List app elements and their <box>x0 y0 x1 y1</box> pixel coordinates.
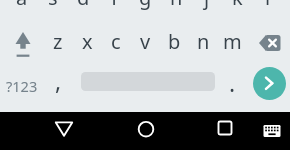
button[interactable]: g <box>128 0 162 17</box>
button[interactable]: f <box>97 0 131 17</box>
button[interactable]: x <box>70 21 104 61</box>
staticText: v <box>140 28 151 55</box>
button[interactable] <box>206 111 244 145</box>
button[interactable]: c <box>99 21 133 61</box>
staticText: a <box>16 0 28 11</box>
staticText: h <box>170 0 183 11</box>
staticText: j <box>204 0 210 11</box>
staticText: ?123 <box>6 76 38 96</box>
button[interactable]: v <box>128 21 162 61</box>
staticText: d <box>77 0 90 11</box>
staticText: x <box>82 28 93 55</box>
button[interactable] <box>127 112 165 146</box>
staticText: g <box>139 0 152 11</box>
staticText: b <box>168 28 181 55</box>
button[interactable]: l <box>251 0 285 17</box>
button[interactable] <box>45 112 83 146</box>
button[interactable] <box>4 26 42 60</box>
button[interactable]: m <box>215 21 249 61</box>
staticText: s <box>48 0 58 11</box>
button[interactable]: , <box>41 60 75 100</box>
staticText: f <box>111 0 118 11</box>
staticText: l <box>265 0 271 11</box>
button[interactable]: z <box>41 21 75 61</box>
staticText: z <box>53 28 63 55</box>
button[interactable]: k <box>220 0 254 17</box>
button[interactable] <box>253 67 286 100</box>
button[interactable]: ?123 <box>2 66 42 106</box>
button[interactable] <box>254 30 286 56</box>
button[interactable]: b <box>157 21 191 61</box>
staticText: c <box>111 28 121 55</box>
staticText: n <box>197 28 210 55</box>
staticText: m <box>223 28 242 55</box>
button[interactable]: j <box>190 0 224 17</box>
button[interactable]: h <box>159 0 193 17</box>
button[interactable]: d <box>66 0 100 17</box>
staticText: . <box>229 67 236 98</box>
staticText: , <box>55 65 62 96</box>
staticText: k <box>232 0 243 11</box>
button[interactable]: s <box>36 0 70 17</box>
button[interactable] <box>258 118 286 144</box>
button[interactable]: a <box>5 0 39 17</box>
button[interactable]: n <box>186 21 220 61</box>
button[interactable]: . <box>215 62 249 102</box>
